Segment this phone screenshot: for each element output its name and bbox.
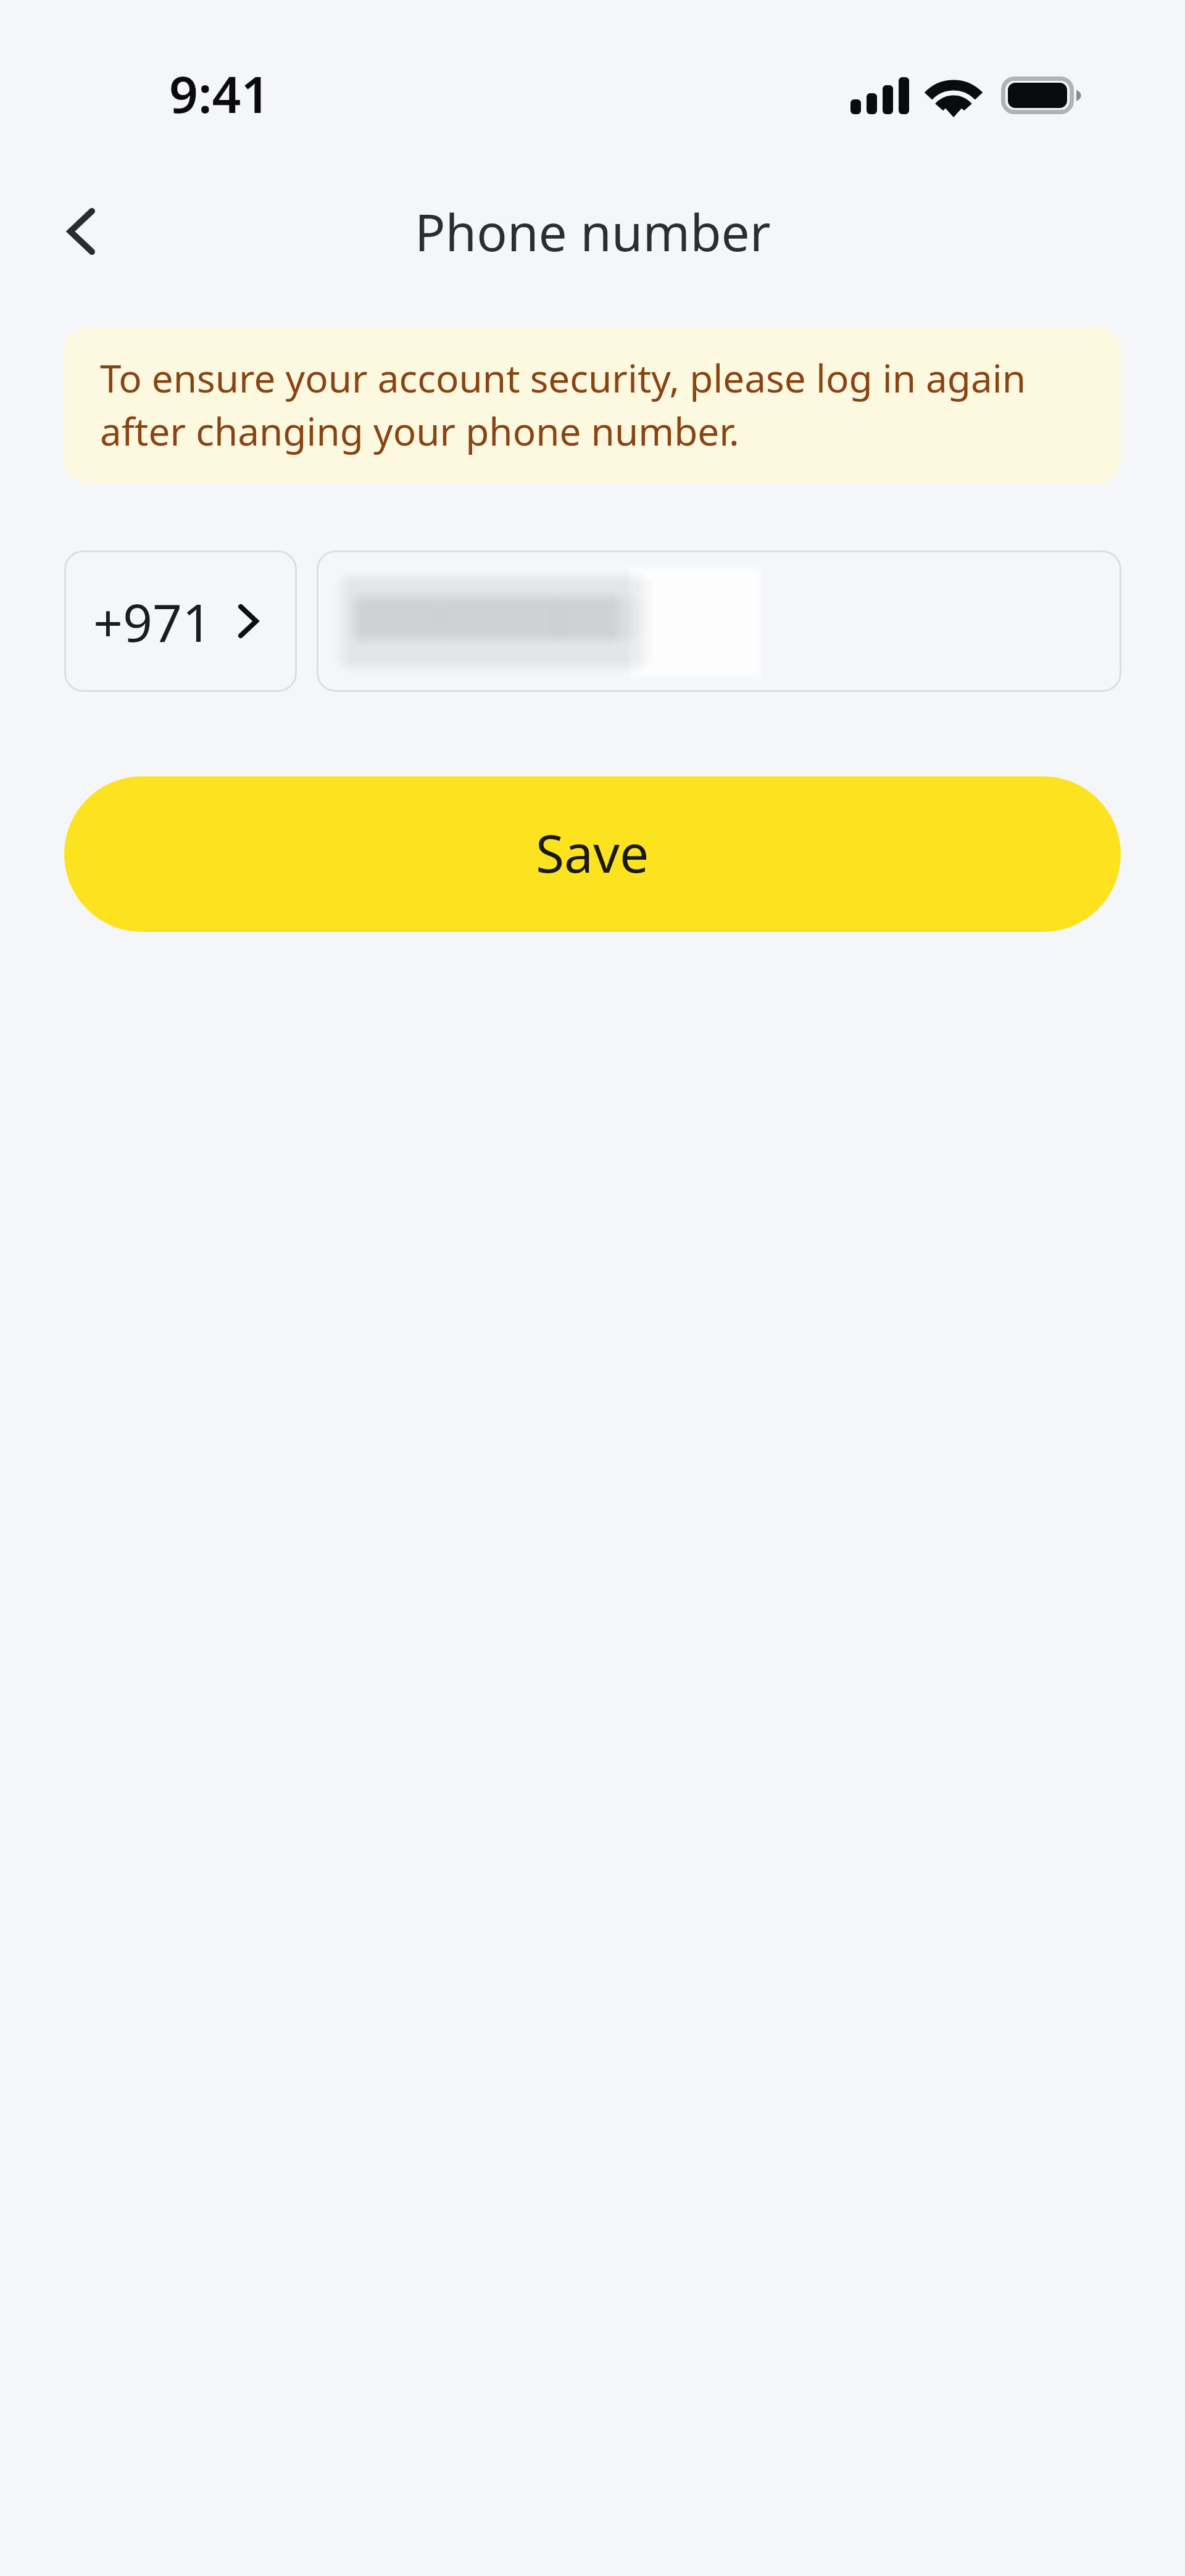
staticText: To ensure your account security, please … xyxy=(100,352,1038,457)
button[interactable]: +971 xyxy=(64,551,297,692)
button[interactable]: Back xyxy=(44,194,118,268)
button[interactable] xyxy=(317,551,1121,692)
staticText: Save xyxy=(536,817,649,887)
staticText: 9:41 xyxy=(169,59,270,128)
staticText: Phone number xyxy=(415,197,771,266)
button[interactable]: Save xyxy=(64,776,1121,932)
staticText: +971 xyxy=(93,586,212,657)
